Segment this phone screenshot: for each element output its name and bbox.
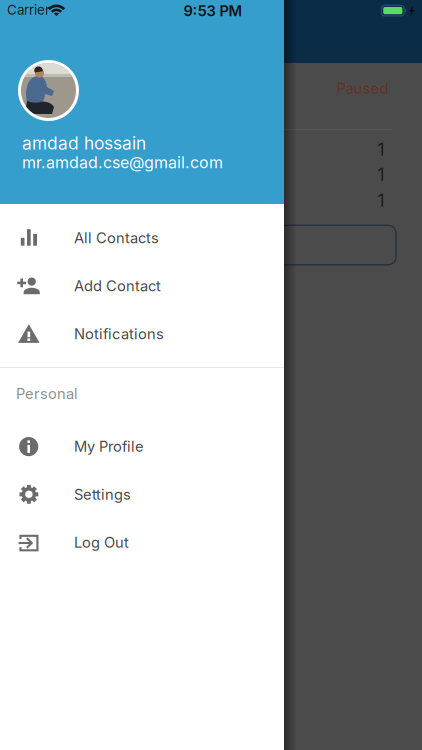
button[interactable]: My Profile [0,422,284,470]
staticText: All Contacts [74,229,159,247]
staticText: My Profile [74,438,144,455]
staticText: mr.amdad.cse@gmail.com [22,153,223,172]
button[interactable]: Log Out [0,518,284,566]
staticText: 1 [377,190,384,211]
staticText: 1 [377,139,384,160]
staticText: 1 [377,164,384,185]
button[interactable]: Notifications [0,310,284,358]
button[interactable]: Settings [0,470,284,518]
staticText: Notifications [74,325,164,343]
staticText: Add Contact [74,277,161,295]
button[interactable]: Add Contact [0,262,284,310]
staticText: 9:53 PM [183,2,242,20]
staticText: Personal [16,385,78,402]
staticText: Settings [74,486,131,503]
staticText: Paused [336,80,388,97]
staticText: amdad hossain [22,133,146,153]
button[interactable]: All Contacts [0,214,284,262]
staticText: Log Out [74,534,129,551]
staticText: Carrier [7,2,50,18]
